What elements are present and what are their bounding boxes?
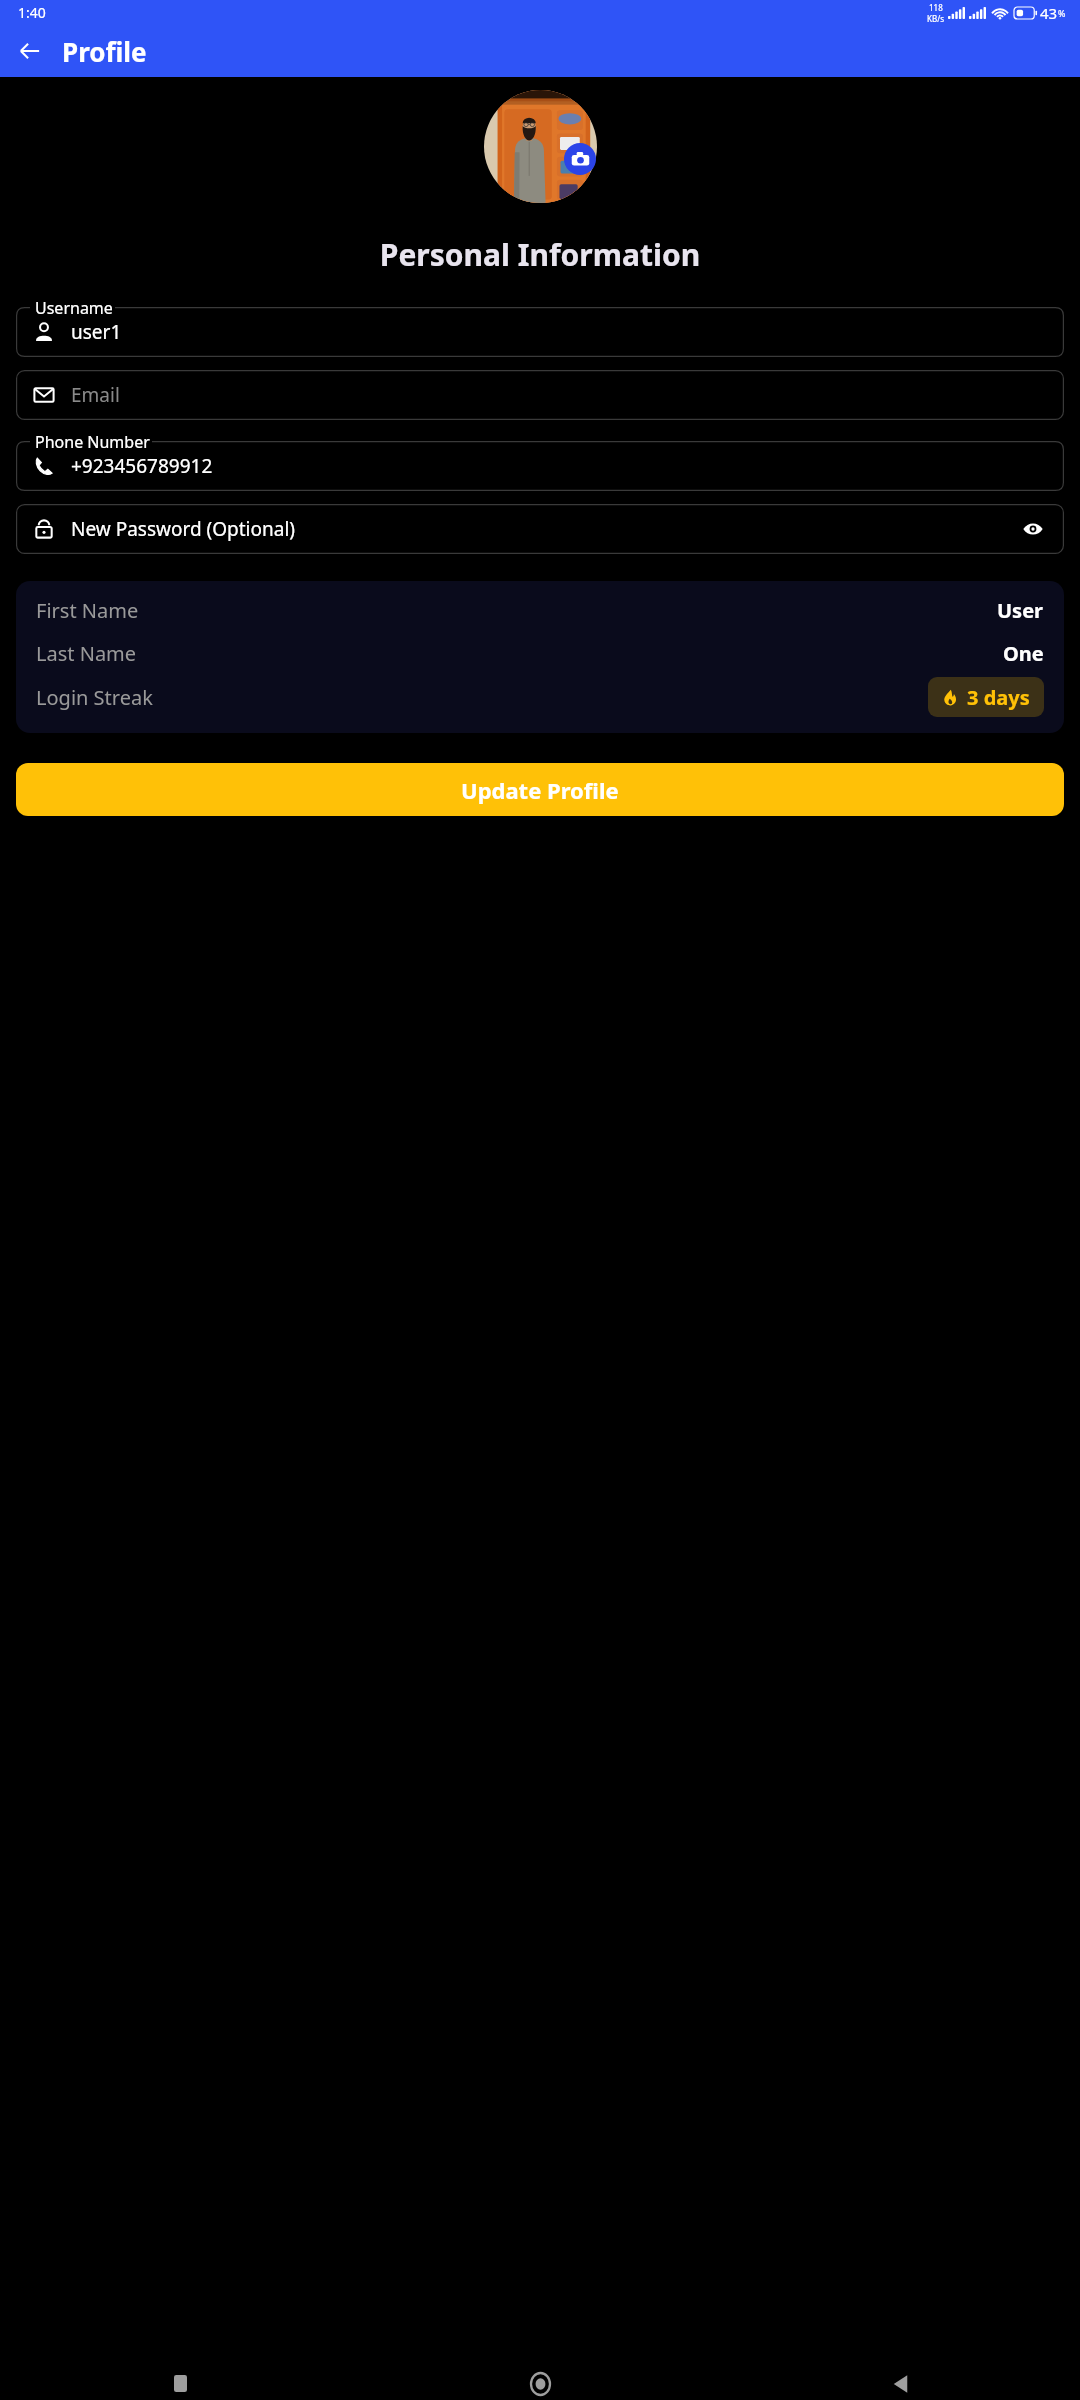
staticText: 118 bbox=[929, 2, 943, 13]
staticText: KB/s bbox=[927, 13, 944, 24]
staticText: One bbox=[1003, 640, 1044, 667]
button[interactable]: Profile photo bbox=[484, 90, 597, 203]
staticText: Email bbox=[71, 382, 120, 408]
staticText: Update Profile bbox=[461, 775, 619, 805]
staticText: +923456789912 bbox=[71, 453, 213, 479]
staticText: % bbox=[1058, 7, 1066, 19]
staticText: Username bbox=[35, 297, 113, 319]
button[interactable]: Back bbox=[720, 2367, 1080, 2400]
button[interactable]: Change photo bbox=[564, 143, 596, 175]
staticText: 1:40 bbox=[18, 3, 46, 22]
staticText: First Name bbox=[36, 597, 139, 624]
staticText: Last Name bbox=[36, 640, 137, 667]
staticText: Login Streak bbox=[36, 684, 153, 711]
staticText: New Password (Optional) bbox=[71, 516, 296, 542]
staticText: User bbox=[997, 597, 1044, 624]
button[interactable]: Update Profile bbox=[16, 763, 1064, 816]
staticText: 3 days bbox=[967, 684, 1030, 710]
staticText: user1 bbox=[71, 319, 122, 345]
button[interactable]: 3 days bbox=[928, 677, 1044, 717]
staticText: 43 bbox=[1040, 3, 1058, 23]
staticText: Phone Number bbox=[35, 431, 150, 453]
staticText: Personal Information bbox=[0, 234, 1080, 275]
staticText: Profile bbox=[62, 34, 147, 69]
button[interactable]: Home bbox=[360, 2367, 720, 2400]
button[interactable]: Back bbox=[6, 27, 54, 75]
button[interactable]: Show password bbox=[1018, 514, 1048, 544]
button[interactable]: Recents bbox=[0, 2367, 360, 2400]
